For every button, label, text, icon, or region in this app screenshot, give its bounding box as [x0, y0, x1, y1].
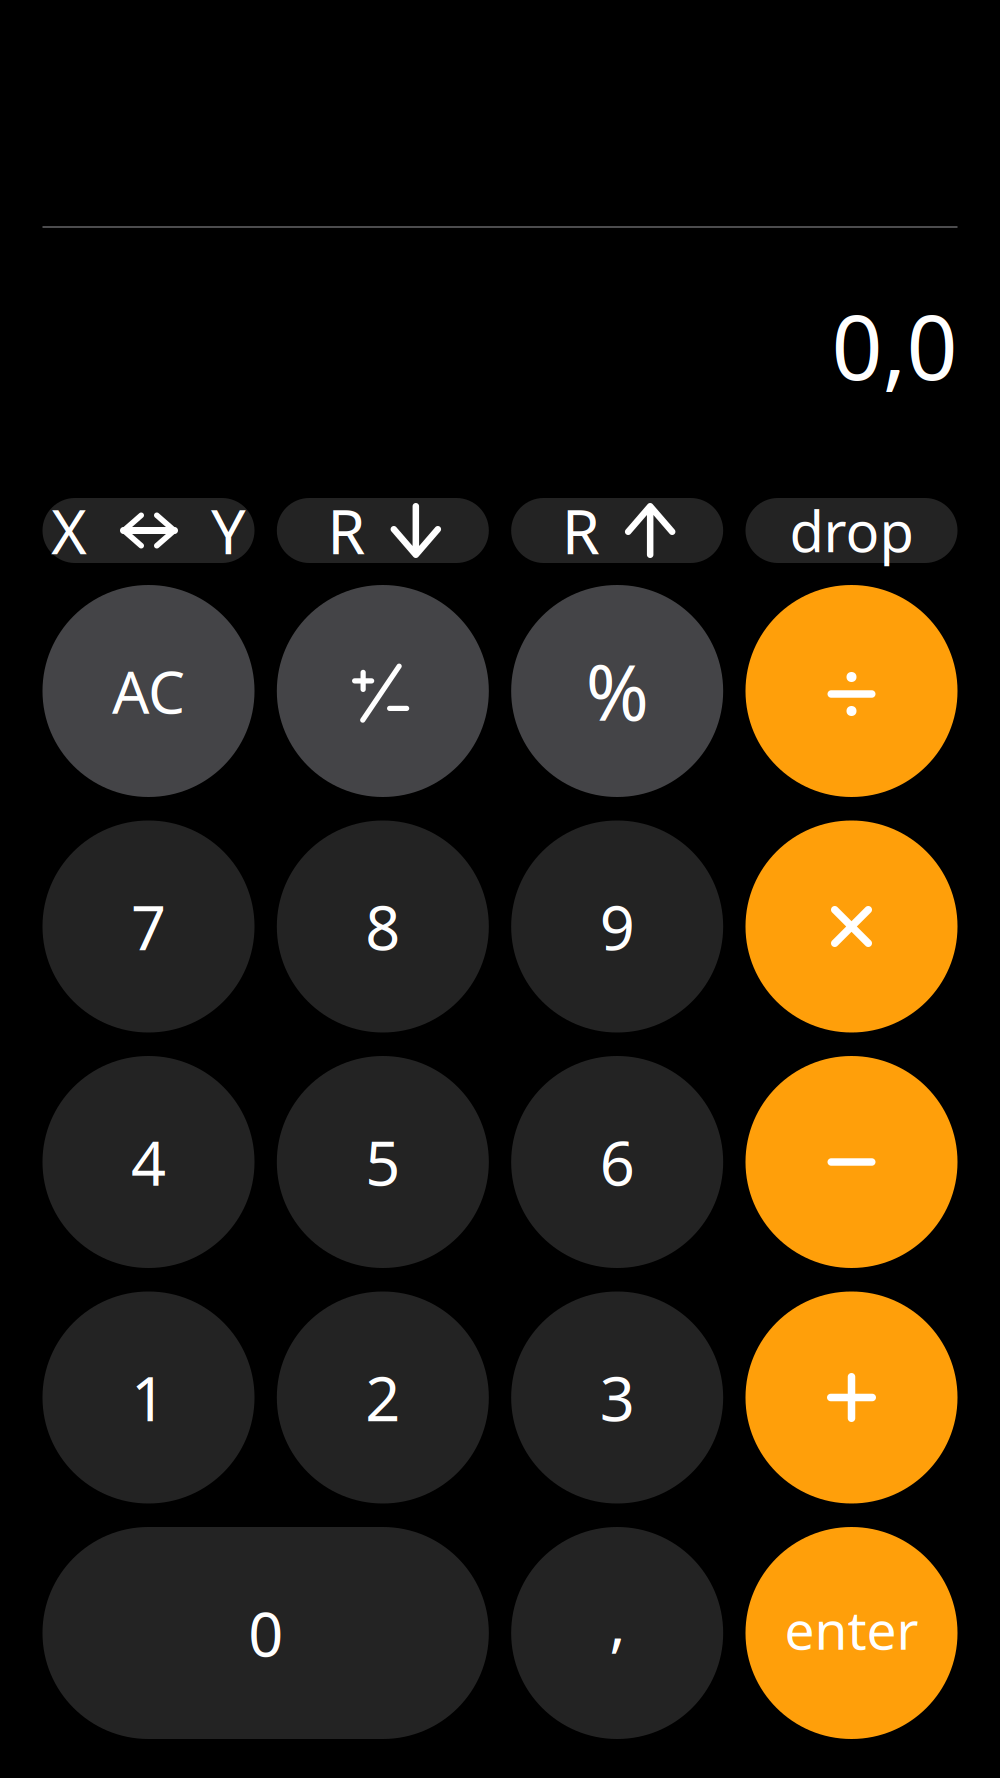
button[interactable]: 9 [511, 820, 723, 1032]
button[interactable]: 6 [511, 1056, 723, 1268]
button[interactable]: enter [745, 1527, 957, 1739]
staticText: 0,0 [831, 286, 957, 405]
button[interactable]: Roll up [511, 498, 723, 563]
button[interactable]: 2 [277, 1291, 489, 1503]
button[interactable]: AC [42, 585, 254, 797]
staticText: % [586, 640, 649, 741]
staticText: 8 [365, 886, 400, 967]
button[interactable]: Toggle sign [277, 585, 489, 797]
staticText: 3 [600, 1357, 635, 1438]
button[interactable]: drop [745, 498, 957, 563]
button[interactable]: Multiply [745, 820, 957, 1032]
button[interactable]: 7 [42, 820, 254, 1032]
staticText: 6 [600, 1121, 635, 1203]
button[interactable]: 5 [277, 1056, 489, 1268]
staticText: 1 [131, 1357, 166, 1438]
staticText: X [51, 490, 87, 571]
staticText: 0 [248, 1592, 283, 1674]
staticText: 5 [365, 1121, 400, 1203]
staticText: AC [112, 652, 185, 730]
button[interactable]: Divide [745, 585, 957, 797]
button[interactable]: 1 [42, 1291, 254, 1503]
button[interactable]: Swap X and Y [42, 498, 254, 563]
staticText: 7 [131, 886, 166, 967]
button[interactable]: Subtract [745, 1056, 957, 1268]
staticText: drop [789, 493, 913, 568]
staticText: Y [211, 490, 246, 571]
button[interactable]: 8 [277, 820, 489, 1032]
staticText: 9 [600, 886, 635, 967]
button[interactable]: , [511, 1527, 723, 1739]
staticText: 4 [131, 1121, 166, 1203]
button[interactable]: % [511, 585, 723, 797]
button[interactable]: Add [745, 1291, 957, 1503]
staticText: enter [784, 1594, 918, 1664]
button[interactable]: 0 [42, 1527, 489, 1739]
button[interactable]: Roll down [277, 498, 489, 563]
staticText: R [327, 490, 365, 571]
button[interactable]: 4 [42, 1056, 254, 1268]
button[interactable]: 3 [511, 1291, 723, 1503]
staticText: R [562, 490, 600, 571]
staticText: 2 [365, 1357, 400, 1438]
staticText: , [609, 1581, 625, 1663]
